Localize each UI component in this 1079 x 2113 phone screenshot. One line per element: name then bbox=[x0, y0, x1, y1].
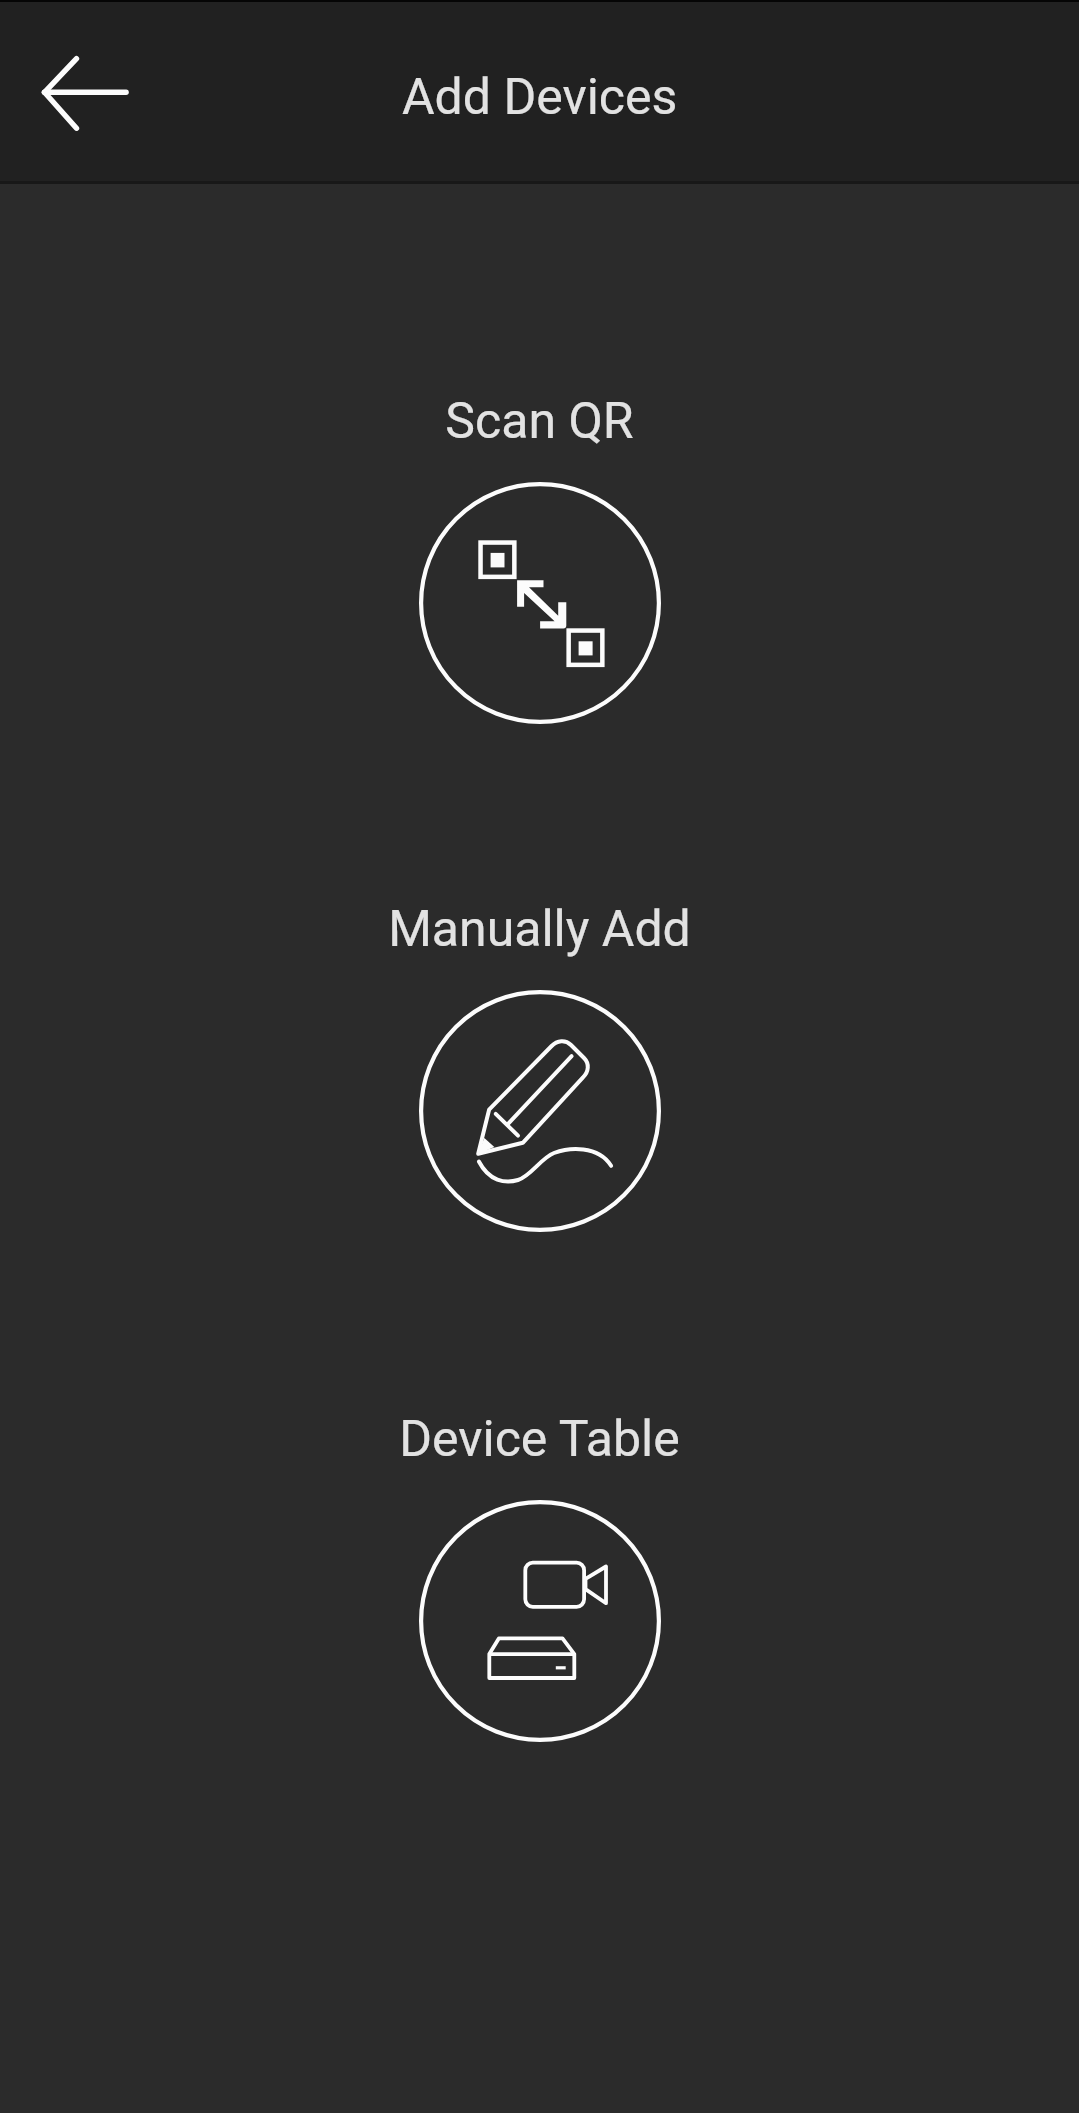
staticText: Add Devices bbox=[402, 68, 678, 127]
button[interactable]: Back bbox=[14, 22, 154, 162]
staticText: Device Table bbox=[0, 1410, 1079, 1469]
button[interactable]: Scan QR bbox=[0, 378, 1079, 738]
button[interactable]: Device Table bbox=[0, 1396, 1079, 1756]
staticText: Manually Add bbox=[0, 900, 1079, 959]
button[interactable]: Manually Add bbox=[0, 886, 1079, 1246]
staticText: Scan QR bbox=[0, 392, 1079, 451]
